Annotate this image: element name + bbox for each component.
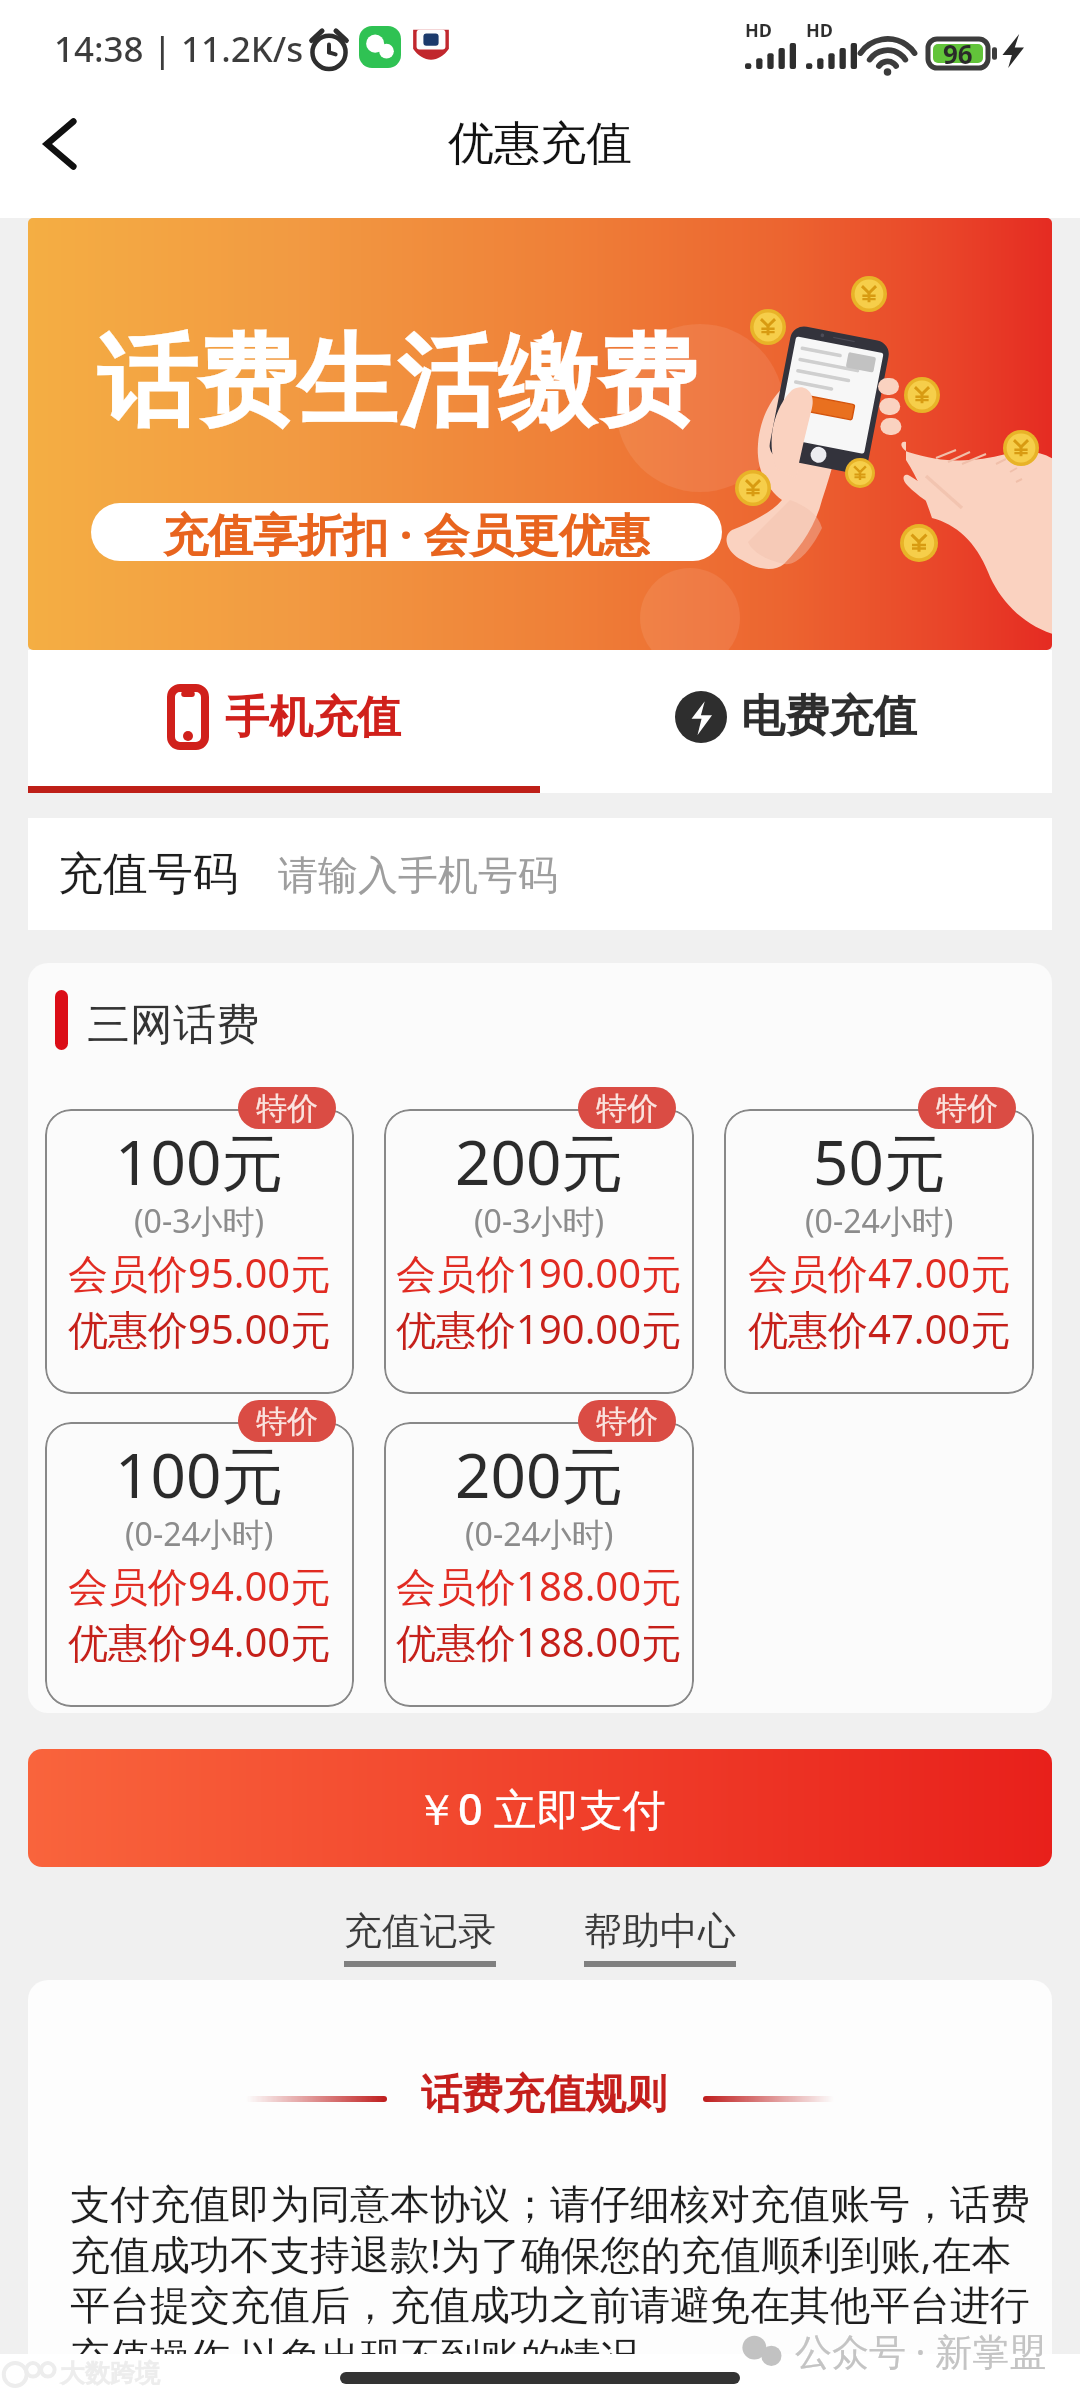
staticText: 大数跨境: [60, 2358, 160, 2389]
button[interactable]: 50元: [724, 1109, 1034, 1394]
staticText: 100元: [115, 1119, 284, 1204]
staticText: (0-24小时): [465, 1512, 614, 1556]
staticText: 14:38 | 11.2K/s: [54, 25, 304, 73]
staticText: 96: [943, 36, 973, 71]
staticText: 优惠价95.00元: [68, 1301, 331, 1356]
staticText: 50元: [813, 1119, 946, 1204]
staticText: 会员价94.00元: [68, 1558, 331, 1613]
button[interactable]: 帮助中心: [584, 1907, 736, 1967]
staticText: 充值享折扣 · 会员更优惠: [163, 503, 650, 561]
staticText: 特价: [596, 1089, 658, 1128]
button[interactable]: 充值记录: [344, 1907, 496, 1967]
staticText: 优惠价94.00元: [68, 1614, 331, 1669]
staticText: 优惠价188.00元: [396, 1614, 682, 1669]
button[interactable]: 电费充值: [540, 650, 1052, 793]
staticText: 三网话费: [87, 998, 259, 1052]
staticText: 100元: [115, 1432, 284, 1517]
button[interactable]: 话费生活缴费: [28, 218, 1052, 650]
staticText: 帮助中心: [584, 1907, 736, 1955]
staticText: 200元: [455, 1432, 624, 1517]
staticText: 优惠充值: [448, 115, 632, 173]
staticText: 电费充值: [741, 689, 917, 744]
button[interactable]: Back: [14, 100, 102, 188]
staticText: 话费充值规则: [421, 2069, 667, 2121]
staticText: 公众号 · 新掌盟: [795, 2325, 1047, 2376]
staticText: 充值号码: [58, 846, 238, 903]
staticText: HD: [806, 18, 833, 43]
button[interactable]: 200元: [384, 1109, 694, 1394]
staticText: (0-3小时): [134, 1199, 265, 1243]
staticText: 优惠价47.00元: [748, 1301, 1011, 1356]
staticText: 会员价188.00元: [396, 1558, 682, 1613]
staticText: 特价: [256, 1402, 318, 1441]
staticText: 请输入手机号码: [278, 850, 558, 900]
staticText: (0-24小时): [125, 1512, 274, 1556]
staticText: (0-24小时): [805, 1199, 954, 1243]
staticText: 手机充值: [225, 690, 401, 745]
staticText: 特价: [256, 1089, 318, 1128]
staticText: 特价: [596, 1402, 658, 1441]
button[interactable]: 200元: [384, 1422, 694, 1707]
button[interactable]: 手机充值: [28, 650, 540, 793]
button[interactable]: ￥0 立即支付: [28, 1749, 1052, 1867]
staticText: 会员价95.00元: [68, 1245, 331, 1300]
staticText: 会员价190.00元: [396, 1245, 682, 1300]
staticText: 话费生活缴费: [97, 320, 697, 446]
staticText: 优惠价190.00元: [396, 1301, 682, 1356]
staticText: 特价: [936, 1089, 998, 1128]
staticText: ￥0 立即支付: [415, 1779, 666, 1838]
staticText: 支付充值即为同意本协议；请仔细核对充值账号，话费充值成功不支持退款!为了确保您的…: [70, 2179, 1032, 2380]
staticText: HD: [745, 18, 772, 43]
staticText: 会员价47.00元: [748, 1245, 1011, 1300]
button[interactable]: 100元: [45, 1109, 354, 1394]
staticText: 充值记录: [344, 1907, 496, 1955]
staticText: (0-3小时): [474, 1199, 605, 1243]
button[interactable]: 100元: [45, 1422, 354, 1707]
button[interactable]: 充值号码: [28, 818, 1052, 930]
staticText: 200元: [455, 1119, 624, 1204]
